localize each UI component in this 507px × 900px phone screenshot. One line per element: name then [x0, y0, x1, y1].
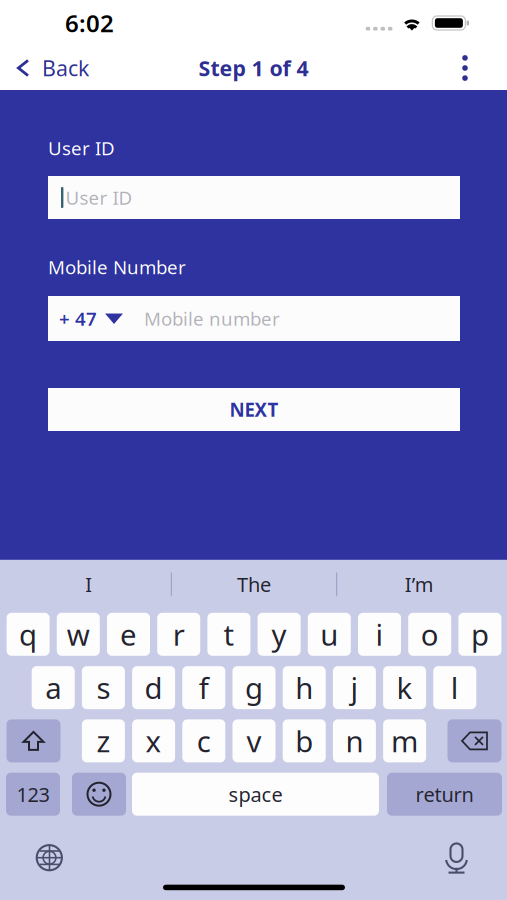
staticText: + 47: [59, 306, 97, 331]
staticText: p: [471, 615, 489, 654]
staticText: x: [146, 721, 162, 760]
staticText: m: [391, 721, 418, 760]
staticText: r: [173, 615, 185, 654]
button[interactable]: NEXT: [48, 388, 460, 431]
button[interactable]: j: [333, 666, 376, 709]
button[interactable]: v: [232, 719, 275, 762]
staticText: j: [350, 668, 358, 707]
staticText: User ID: [48, 136, 115, 160]
button[interactable]: a: [32, 666, 75, 709]
staticText: h: [295, 668, 313, 707]
button[interactable]: c: [182, 719, 225, 762]
button[interactable]: g: [232, 666, 275, 709]
button[interactable]: I’m: [337, 565, 501, 604]
staticText: Mobile number: [144, 306, 280, 331]
button[interactable]: space: [132, 773, 379, 816]
staticText: e: [120, 615, 137, 654]
staticText: NEXT: [229, 397, 278, 422]
staticText: I: [85, 571, 92, 598]
button[interactable]: w: [57, 613, 100, 656]
staticText: s: [96, 668, 110, 707]
button[interactable]: n: [333, 719, 376, 762]
button[interactable]: + 47: [48, 296, 144, 341]
button[interactable]: Emoji: [72, 773, 126, 816]
button[interactable]: e: [107, 613, 150, 656]
staticText: v: [246, 721, 261, 760]
staticText: I’m: [405, 571, 434, 598]
staticText: w: [67, 615, 90, 654]
staticText: User ID: [65, 185, 132, 210]
button[interactable]: Delete: [447, 719, 501, 762]
button[interactable]: x: [132, 719, 175, 762]
staticText: Step 1 of 4: [198, 54, 308, 82]
button[interactable]: z: [82, 719, 125, 762]
staticText: u: [320, 615, 338, 654]
button[interactable]: return: [387, 773, 502, 816]
button[interactable]: r: [157, 613, 200, 656]
button[interactable]: Back: [0, 46, 101, 90]
staticText: Mobile Number: [48, 255, 186, 279]
button[interactable]: t: [207, 613, 250, 656]
button[interactable]: i: [358, 613, 401, 656]
button[interactable]: q: [7, 613, 50, 656]
staticText: o: [421, 615, 439, 654]
staticText: return: [415, 781, 473, 807]
button[interactable]: d: [132, 666, 175, 709]
staticText: i: [375, 615, 383, 654]
button[interactable]: k: [383, 666, 426, 709]
staticText: q: [19, 615, 37, 654]
staticText: c: [197, 721, 211, 760]
button[interactable]: l: [433, 666, 476, 709]
staticText: b: [295, 721, 313, 760]
button[interactable]: I: [6, 565, 171, 604]
staticText: Back: [42, 54, 89, 82]
button[interactable]: Dictation: [433, 839, 479, 877]
button[interactable]: Change keyboard: [26, 839, 72, 877]
staticText: z: [96, 721, 110, 760]
staticText: t: [223, 615, 234, 654]
button[interactable]: More options: [442, 46, 488, 90]
button[interactable]: y: [258, 613, 301, 656]
button[interactable]: m: [383, 719, 426, 762]
staticText: 6:02: [65, 7, 114, 39]
button[interactable]: u: [308, 613, 351, 656]
staticText: space: [228, 781, 282, 807]
staticText: n: [345, 721, 363, 760]
staticText: 123: [16, 781, 49, 807]
button[interactable]: 123: [6, 773, 60, 816]
button[interactable]: b: [283, 719, 326, 762]
button[interactable]: Shift: [6, 719, 60, 762]
staticText: d: [145, 668, 163, 707]
button[interactable]: h: [283, 666, 326, 709]
staticText: a: [45, 668, 61, 707]
button[interactable]: s: [82, 666, 125, 709]
button[interactable]: p: [458, 613, 501, 656]
staticText: f: [199, 668, 209, 707]
button[interactable]: f: [182, 666, 225, 709]
button[interactable]: o: [408, 613, 451, 656]
staticText: y: [272, 615, 287, 654]
staticText: The: [237, 571, 271, 598]
staticText: k: [397, 668, 413, 707]
staticText: g: [245, 668, 263, 707]
button[interactable]: The: [172, 565, 336, 604]
staticText: l: [451, 668, 459, 707]
